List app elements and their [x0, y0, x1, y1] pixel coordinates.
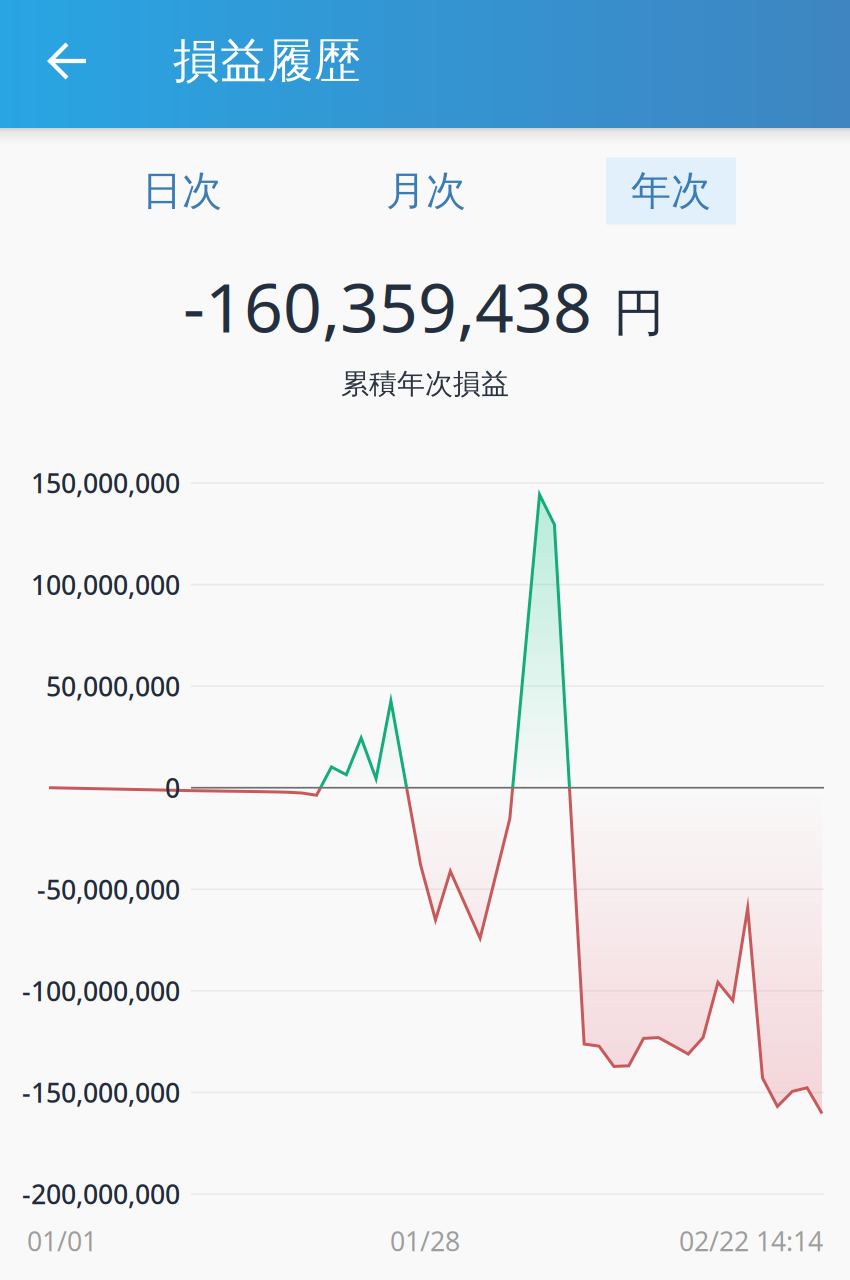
staticText: 01/28: [390, 1223, 460, 1259]
staticText: 02/22 14:14: [679, 1223, 823, 1259]
staticText: 150,000,000: [31, 465, 180, 501]
staticText: 累積年次損益: [341, 367, 509, 401]
staticText: 01/01: [27, 1223, 97, 1259]
staticText: -100,000,000: [22, 973, 180, 1009]
staticText: 損益履歴: [173, 32, 361, 90]
staticText: -200,000,000: [22, 1176, 180, 1212]
staticText: 円: [613, 282, 664, 344]
staticText: 年次: [631, 166, 711, 215]
staticText: -160,359,438: [183, 261, 592, 351]
staticText: 日次: [142, 166, 222, 215]
staticText: -150,000,000: [22, 1075, 180, 1110]
staticText: 100,000,000: [31, 567, 180, 602]
button[interactable]: Back: [18, 0, 118, 124]
staticText: 50,000,000: [46, 668, 180, 704]
button[interactable]: 日次: [60, 141, 304, 241]
staticText: -50,000,000: [37, 872, 180, 907]
button[interactable]: 月次: [304, 141, 548, 241]
staticText: 月次: [386, 166, 466, 215]
button[interactable]: 年次: [549, 141, 793, 241]
staticText: 0: [165, 770, 180, 805]
